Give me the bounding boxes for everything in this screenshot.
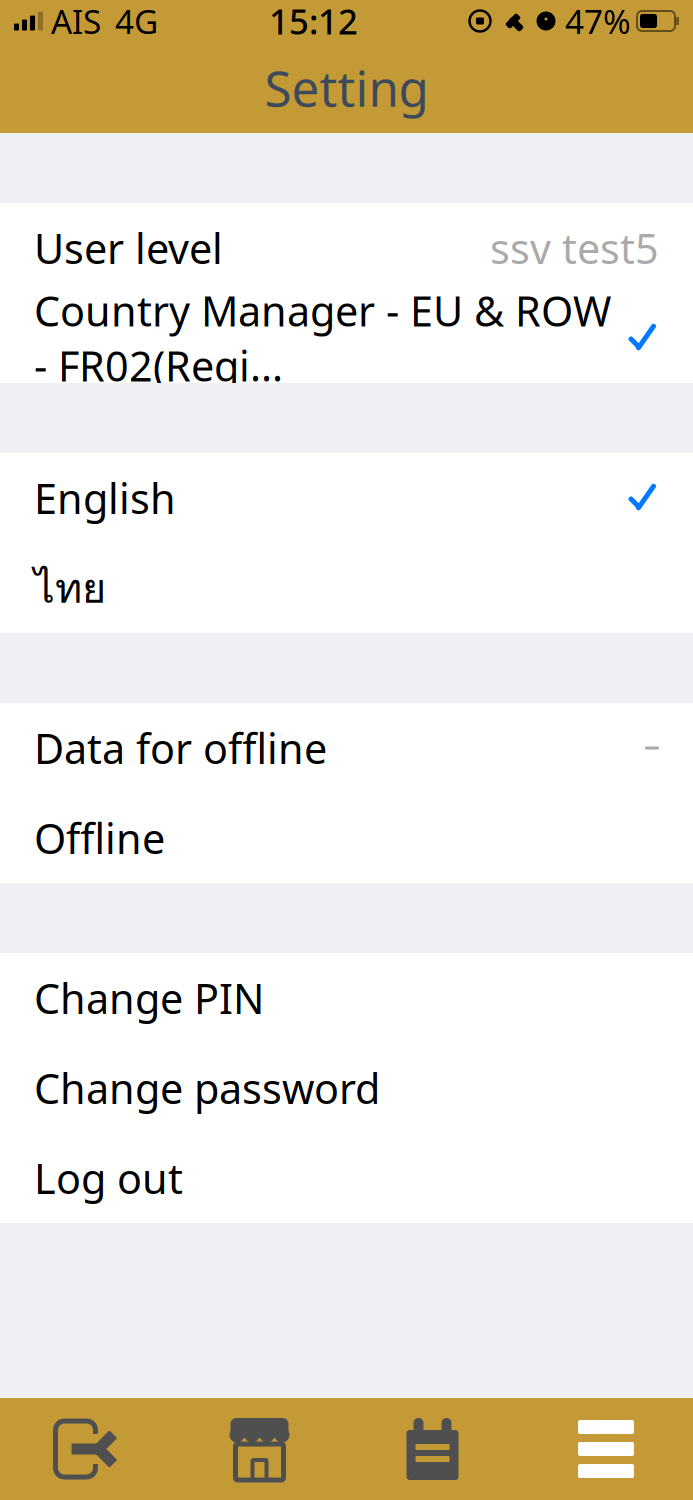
button[interactable]: Country Manager - EU & ROW - FR02(Regi..… [0,293,693,383]
button[interactable]: User level [0,203,693,293]
button[interactable]: Sign out [0,1398,173,1500]
staticText: English [34,471,176,525]
button[interactable]: Menu [519,1398,693,1500]
button[interactable]: Change PIN [0,953,693,1043]
staticText: ไทย [34,556,106,620]
staticText: AIS [51,0,101,43]
staticText: Setting [264,55,428,120]
staticText: Data for offline [34,721,327,775]
staticText: 4G [115,0,158,43]
button[interactable]: Store [173,1398,346,1500]
button[interactable]: Data for offline [0,703,693,793]
staticText: ssv test5 [490,221,659,275]
button[interactable]: Change password [0,1043,693,1133]
staticText: Offline [34,811,165,865]
staticText: 15:12 [269,0,358,44]
staticText: Log out [34,1151,183,1205]
staticText: Change PIN [34,971,264,1025]
staticText: Change password [34,1061,380,1115]
button[interactable]: Orders [346,1398,519,1500]
button[interactable]: Log out [0,1133,693,1223]
button[interactable]: English [0,453,693,543]
button[interactable]: ไทย [0,543,693,633]
staticText: 47% [565,0,631,43]
staticText: User level [34,221,223,275]
staticText: Country Manager - EU & ROW - FR02(Regi..… [34,283,611,393]
button[interactable]: Offline [0,793,693,883]
